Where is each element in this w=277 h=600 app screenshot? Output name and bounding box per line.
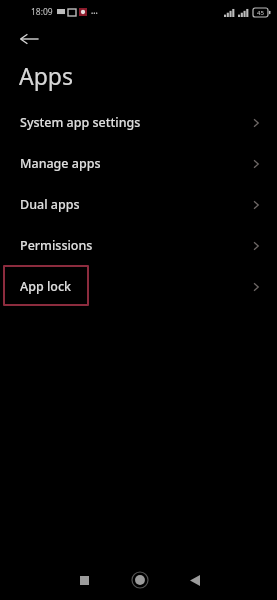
staticText: Permissions — [20, 237, 93, 254]
staticText: ··· — [91, 7, 98, 18]
button[interactable]: App lock — [0, 266, 277, 307]
button[interactable]: Back — [14, 27, 44, 51]
staticText: 45 — [257, 9, 264, 17]
button[interactable]: Recent apps — [70, 566, 98, 594]
button[interactable]: Manage apps — [0, 143, 277, 184]
staticText: App lock — [20, 278, 72, 295]
staticText: Dual apps — [20, 196, 80, 213]
button[interactable]: System app settings — [0, 102, 277, 143]
staticText: Manage apps — [20, 155, 101, 172]
button[interactable]: Dual apps — [0, 184, 277, 225]
button[interactable]: Permissions — [0, 225, 277, 266]
button[interactable]: Home — [125, 565, 155, 595]
staticText: 18:09 — [31, 6, 53, 18]
staticText: Apps — [19, 60, 74, 91]
button[interactable]: Back — [181, 566, 209, 594]
staticText: System app settings — [20, 114, 141, 131]
